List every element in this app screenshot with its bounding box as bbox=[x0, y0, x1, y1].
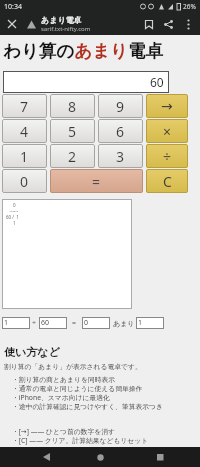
button[interactable]: 1 bbox=[2, 317, 30, 329]
button[interactable]: 60 bbox=[3, 71, 169, 93]
button[interactable] bbox=[182, 18, 194, 30]
button[interactable] bbox=[6, 18, 18, 30]
button[interactable]: 5 bbox=[50, 119, 95, 143]
staticText: 2 bbox=[68, 147, 77, 166]
staticText: 0 bbox=[84, 318, 89, 328]
button[interactable] bbox=[143, 18, 155, 30]
staticText: = bbox=[92, 172, 101, 191]
button[interactable] bbox=[36, 447, 56, 467]
button[interactable]: 1 bbox=[136, 317, 164, 329]
staticText: 割り算の「あまり」が表示される電卓です。 bbox=[4, 362, 142, 371]
staticText: 60 bbox=[41, 318, 50, 328]
staticText: 1 bbox=[138, 318, 143, 328]
staticText: ÷ bbox=[163, 147, 172, 166]
button[interactable]: 0 bbox=[2, 169, 47, 193]
staticText: → bbox=[161, 98, 173, 114]
button[interactable]: × bbox=[146, 119, 188, 143]
staticText: 1 bbox=[20, 147, 29, 166]
staticText: sarif.txt-nifty.com bbox=[41, 25, 91, 33]
staticText: 0 bbox=[20, 172, 29, 191]
button[interactable]: C bbox=[146, 169, 188, 193]
staticText: × bbox=[163, 122, 172, 141]
staticText: あまり電卓 bbox=[41, 15, 82, 25]
button[interactable]: 3 bbox=[98, 144, 143, 168]
button[interactable]: ÷ bbox=[146, 144, 188, 168]
button[interactable]: 2 bbox=[50, 144, 95, 168]
button[interactable]: 7 bbox=[2, 94, 47, 118]
staticText: 9 bbox=[116, 97, 125, 116]
staticText: 3 bbox=[116, 147, 125, 166]
button[interactable] bbox=[162, 18, 174, 30]
staticText: 4 bbox=[20, 122, 29, 141]
staticText: ・[C] ―― クリア。計算結果などもリセット bbox=[12, 436, 149, 445]
staticText: 使い方など bbox=[4, 345, 60, 359]
button[interactable] bbox=[90, 447, 110, 467]
staticText: 1 bbox=[6, 220, 16, 226]
button[interactable] bbox=[150, 447, 170, 467]
button[interactable]: 60 bbox=[39, 317, 67, 329]
button[interactable]: 8 bbox=[50, 94, 95, 118]
button[interactable]: 1 bbox=[2, 144, 47, 168]
staticText: 6 bbox=[116, 122, 125, 141]
button[interactable]: 4 bbox=[2, 119, 47, 143]
staticText: 1 bbox=[4, 318, 9, 328]
staticText: 60 / 1 bbox=[6, 214, 19, 220]
staticText: ・割り算の商とあまりを同時表示 bbox=[12, 375, 116, 384]
staticText: 26% bbox=[183, 2, 196, 11]
staticText: ・途中の計算確認に見つけやすく、筆算表示つき bbox=[12, 402, 163, 411]
button[interactable]: 6 bbox=[98, 119, 143, 143]
staticText: わり算のあまり電卓 bbox=[3, 40, 163, 62]
staticText: ・通常の電卓と同じように使える簡単操作 bbox=[12, 384, 143, 393]
button[interactable]: = bbox=[50, 169, 143, 193]
staticText: = bbox=[72, 318, 77, 328]
staticText: 5 bbox=[68, 122, 77, 141]
button[interactable]: 0 bbox=[82, 317, 110, 329]
staticText: 0 bbox=[6, 202, 16, 208]
button[interactable]: 9 bbox=[98, 94, 143, 118]
staticText: 60 bbox=[150, 74, 164, 90]
button[interactable]: → bbox=[146, 94, 188, 118]
staticText: 10:34 bbox=[4, 2, 22, 12]
staticText: C bbox=[163, 172, 172, 191]
staticText: ------ bbox=[6, 208, 19, 214]
staticText: ・iPhone、スマホ向けに最適化 bbox=[12, 393, 110, 402]
staticText: あまり bbox=[113, 319, 135, 328]
staticText: ÷ bbox=[32, 318, 37, 328]
staticText: 8 bbox=[68, 97, 77, 116]
staticText: ・[→] ―― ひとつ前の数字を消す bbox=[12, 427, 116, 436]
staticText: 7 bbox=[20, 97, 29, 116]
